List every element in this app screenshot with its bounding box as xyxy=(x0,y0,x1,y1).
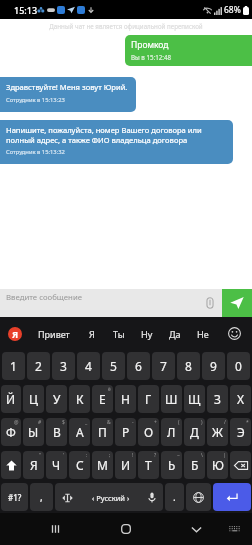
button[interactable]: Е xyxy=(92,385,113,413)
button[interactable]: Л xyxy=(161,418,182,446)
button[interactable] xyxy=(230,451,251,479)
staticText: С xyxy=(76,457,84,473)
button[interactable]: Ф xyxy=(1,418,21,446)
button[interactable]: 2 xyxy=(27,352,50,380)
button[interactable]: Ю xyxy=(207,451,228,479)
button[interactable]: Й xyxy=(1,385,21,413)
button[interactable]: Т xyxy=(138,451,159,479)
button[interactable]: 4 xyxy=(77,352,100,380)
button[interactable]: Ну xyxy=(132,317,161,350)
staticText: \ xyxy=(201,452,203,459)
staticText: ; xyxy=(109,452,111,459)
button[interactable]: М xyxy=(92,451,113,479)
button[interactable]: К xyxy=(69,385,90,413)
button[interactable]: Enter xyxy=(213,483,251,511)
button[interactable]: Attach file xyxy=(198,289,222,317)
staticText: ? xyxy=(154,452,157,459)
staticText: * xyxy=(246,419,249,426)
staticText: П xyxy=(98,424,107,440)
staticText: И xyxy=(121,457,131,473)
button[interactable]: Я xyxy=(23,451,44,479)
button[interactable]: Д xyxy=(184,418,205,446)
staticText: - xyxy=(132,419,134,426)
button[interactable]: , xyxy=(30,483,53,511)
staticText: @ xyxy=(14,419,19,426)
staticText: З xyxy=(214,391,221,407)
staticText: Б xyxy=(191,457,199,473)
button[interactable]: Ы xyxy=(23,418,44,446)
staticText: 5 xyxy=(110,358,117,374)
button[interactable]: 7 xyxy=(152,352,175,380)
staticText: Л xyxy=(167,424,176,440)
staticText: ( xyxy=(178,419,180,426)
button[interactable]: С xyxy=(69,451,90,479)
button[interactable]: Напишите, пожалуйста, номер Вашего догов… xyxy=(0,120,233,164)
button[interactable]: Change keyboard xyxy=(218,513,250,545)
staticText: " xyxy=(39,452,42,459)
button[interactable]: #1? xyxy=(1,483,28,511)
button[interactable]: Ь xyxy=(161,451,182,479)
button[interactable]: З xyxy=(207,385,228,413)
button[interactable]: П xyxy=(92,418,113,446)
button[interactable]: Yandex xyxy=(0,317,30,350)
staticText: Ц xyxy=(29,391,38,407)
button[interactable]: Ц xyxy=(23,385,44,413)
button[interactable]: Ж xyxy=(207,418,228,446)
button[interactable]: Send xyxy=(222,289,252,317)
staticText: Я xyxy=(30,457,38,473)
button[interactable]: Н xyxy=(115,385,136,413)
staticText: , xyxy=(40,490,43,504)
button[interactable]: Х xyxy=(230,385,251,413)
button[interactable]: Home xyxy=(108,513,144,545)
button[interactable]: У xyxy=(46,385,67,413)
staticText: Й xyxy=(6,391,16,407)
button[interactable]: 8 xyxy=(177,352,200,380)
button[interactable]: 5 xyxy=(102,352,125,380)
button[interactable]: 0 xyxy=(227,352,250,380)
staticText: : xyxy=(86,452,88,459)
button[interactable]: Hide keyboard xyxy=(178,513,214,545)
staticText: Сотрудник в 15:13:23 xyxy=(6,96,65,104)
button[interactable]: Р xyxy=(115,418,136,446)
button[interactable]: Э xyxy=(230,418,251,446)
button[interactable]: Не xyxy=(189,317,216,350)
button[interactable]: Ч xyxy=(46,451,67,479)
staticText: Ты xyxy=(113,328,125,340)
button[interactable] xyxy=(186,483,211,511)
button[interactable]: Ш xyxy=(161,385,182,413)
staticText: 3 xyxy=(60,358,67,374)
staticText: Ы xyxy=(28,424,39,440)
button[interactable]: Промкод xyxy=(125,35,252,66)
button[interactable]: О xyxy=(138,418,159,446)
staticText: 2 xyxy=(35,358,42,374)
button[interactable]: Г xyxy=(138,385,159,413)
button[interactable]: Да xyxy=(161,317,189,350)
button[interactable] xyxy=(1,451,21,479)
staticText: К xyxy=(76,391,84,407)
button[interactable]: 3 xyxy=(52,352,75,380)
button[interactable]: . xyxy=(165,483,184,511)
button[interactable]: А xyxy=(69,418,90,446)
button[interactable]: Щ xyxy=(184,385,205,413)
staticText: #1? xyxy=(8,492,22,503)
staticText: А xyxy=(76,424,84,440)
button[interactable]: Recent apps xyxy=(37,513,73,545)
button[interactable]: Здравствуйте! Меня зовут Юрий. xyxy=(0,77,136,112)
button[interactable]: И xyxy=(115,451,136,479)
staticText: Н xyxy=(121,391,130,407)
button[interactable]: Привет xyxy=(30,317,78,350)
staticText: Ч xyxy=(52,457,61,473)
staticText: 1 xyxy=(10,358,17,374)
button[interactable]: 6 xyxy=(127,352,150,380)
button[interactable]: 1 xyxy=(2,352,25,380)
staticText: Да xyxy=(169,328,181,340)
button[interactable]: В xyxy=(46,418,67,446)
staticText: ' xyxy=(63,452,65,459)
staticText: ! xyxy=(132,452,134,459)
button[interactable]: ‹ Русский › xyxy=(55,483,163,511)
button[interactable]: Ты xyxy=(105,317,132,350)
button[interactable]: Б xyxy=(184,451,205,479)
button[interactable]: 9 xyxy=(202,352,225,380)
button[interactable]: Emoji xyxy=(216,317,252,350)
button[interactable]: Я xyxy=(78,317,105,350)
